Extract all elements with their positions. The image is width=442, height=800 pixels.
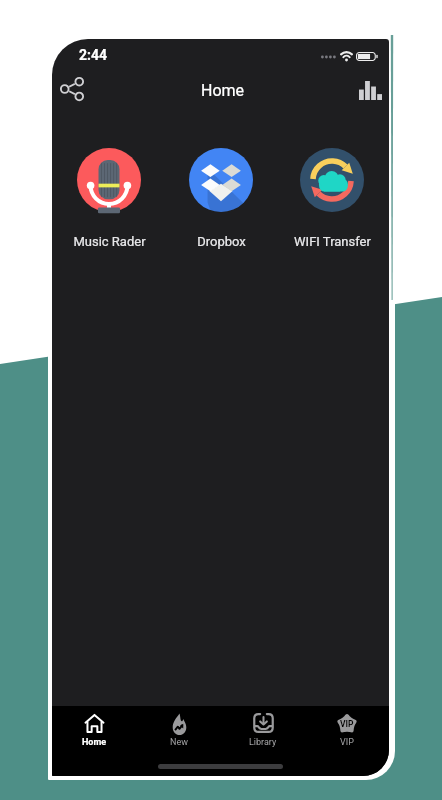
staticText: Home: [82, 737, 107, 748]
button[interactable]: Share: [52, 68, 93, 110]
button[interactable]: Music Rader: [55, 148, 163, 249]
staticText: WIFI Transfer: [294, 234, 371, 249]
button[interactable]: WIFI Transfer: [278, 148, 386, 249]
staticText: 2:44: [79, 47, 108, 63]
staticText: Home: [201, 81, 245, 100]
button[interactable]: Library: [221, 706, 305, 754]
staticText: VIP: [340, 719, 354, 729]
staticText: New: [170, 737, 188, 748]
staticText: VIP: [340, 737, 354, 748]
button[interactable]: Dropbox: [167, 148, 275, 249]
staticText: Music Rader: [73, 234, 146, 249]
button[interactable]: Home: [52, 706, 137, 754]
button[interactable]: New: [137, 706, 221, 754]
staticText: Library: [249, 737, 277, 748]
button[interactable]: VIP: [305, 706, 389, 754]
staticText: Dropbox: [197, 234, 246, 249]
button[interactable]: Statistics: [349, 71, 389, 109]
